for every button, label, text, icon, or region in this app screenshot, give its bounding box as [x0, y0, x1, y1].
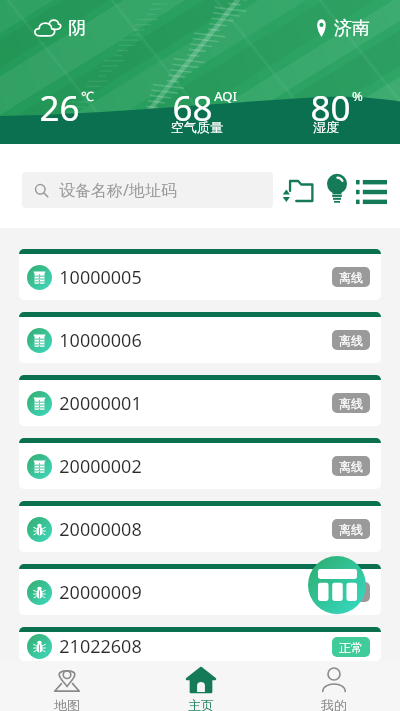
staticText: ℃ [81, 87, 94, 105]
staticText: 21022608 [59, 634, 142, 659]
button[interactable]: 21022608 [19, 627, 381, 661]
button[interactable]: 20000009 [19, 564, 381, 615]
staticText: 阴 [68, 17, 86, 40]
button[interactable]: 主页 [134, 661, 267, 711]
staticText: 离线 [339, 396, 363, 411]
staticText: 80 [310, 84, 351, 132]
button[interactable]: 10000005 [19, 249, 381, 300]
staticText: 济南 [334, 17, 370, 40]
button[interactable]: Sort folders [276, 169, 319, 212]
staticText: 主页 [188, 697, 214, 711]
staticText: 离线 [339, 459, 363, 474]
staticText: 设备名称/地址码 [59, 179, 177, 201]
button[interactable]: 10000006 [19, 312, 381, 363]
button[interactable]: Tips [315, 167, 358, 210]
staticText: 空气质量 [171, 119, 223, 135]
staticText: 离线 [339, 270, 363, 285]
staticText: 26 [39, 84, 80, 132]
staticText: 湿度 [313, 119, 339, 135]
staticText: 10000006 [59, 328, 142, 353]
staticText: 20000002 [59, 454, 142, 479]
button[interactable]: 地图 [0, 661, 134, 711]
staticText: 10000005 [59, 265, 142, 290]
button[interactable]: 设备名称/地址码 [22, 172, 273, 208]
staticText: 离线 [339, 333, 363, 348]
staticText: 20000001 [59, 391, 142, 416]
button[interactable]: 20000008 [19, 501, 381, 552]
button[interactable]: Statistics [308, 556, 366, 614]
staticText: 20000009 [59, 580, 142, 605]
staticText: 20000008 [59, 517, 142, 542]
button[interactable]: 我的 [267, 661, 400, 711]
button[interactable]: 20000002 [19, 438, 381, 489]
staticText: 我的 [321, 697, 347, 711]
staticText: 68 [172, 84, 213, 132]
button[interactable]: List view [350, 169, 393, 212]
staticText: 地图 [54, 697, 80, 711]
staticText: % [352, 87, 363, 105]
staticText: 离线 [339, 585, 363, 600]
staticText: 离线 [339, 522, 363, 537]
staticText: AQI [214, 87, 237, 105]
button[interactable]: 20000001 [19, 375, 381, 426]
staticText: 正常 [339, 640, 363, 655]
